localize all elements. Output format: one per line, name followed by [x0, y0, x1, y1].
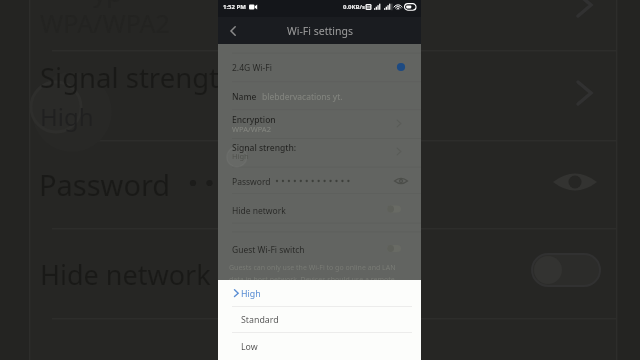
staticText: Hide network — [232, 205, 286, 217]
button[interactable] — [218, 332, 421, 360]
button[interactable] — [218, 44, 421, 81]
staticText: Encryption — [232, 114, 276, 126]
staticText: Standard — [241, 314, 279, 326]
button[interactable] — [218, 306, 421, 332]
button[interactable] — [218, 280, 421, 306]
button[interactable] — [218, 109, 421, 138]
staticText: blebdervacations yt. — [262, 91, 343, 103]
staticText: Low — [241, 341, 258, 353]
staticText: Password — [39, 165, 171, 204]
staticText: Hide network — [40, 256, 211, 293]
staticText: Signal strength: — [232, 142, 297, 154]
staticText: 2.4G Wi-Fi — [232, 62, 272, 74]
button[interactable]: Back — [223, 21, 243, 41]
staticText: 1:52 PM — [223, 3, 246, 11]
staticText: Guests can only use the Wi-Fi to go onli… — [229, 263, 396, 284]
staticText: Signal strengt — [40, 59, 220, 96]
staticText: Name — [232, 91, 257, 103]
staticText: Wi-Fi settings — [287, 24, 353, 38]
button[interactable] — [218, 166, 421, 195]
button[interactable] — [218, 138, 421, 166]
staticText: Password — [232, 176, 271, 188]
button[interactable] — [218, 81, 421, 109]
staticText: WPA/WPA2 — [232, 124, 271, 134]
staticText: High — [232, 151, 249, 161]
staticText: High — [40, 100, 94, 133]
button[interactable] — [218, 195, 421, 221]
button[interactable] — [218, 231, 421, 263]
staticText: Guest Wi-Fi switch — [232, 244, 305, 256]
staticText: High — [241, 288, 261, 300]
staticText: 0.0KB/s — [343, 3, 366, 11]
